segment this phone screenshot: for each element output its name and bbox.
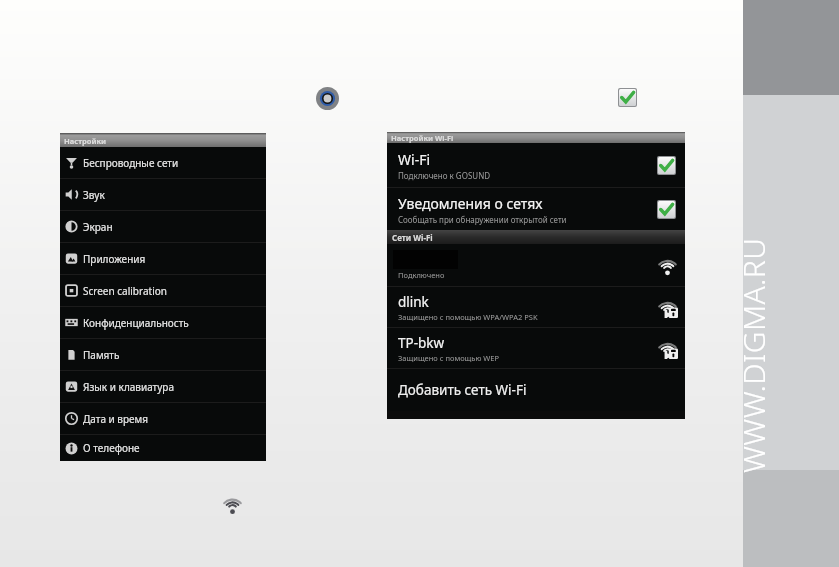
staticText: WWW.DIGMA.RU <box>733 237 765 473</box>
staticText: Беспроводные сети <box>83 156 179 170</box>
button[interactable]: TP-bkw <box>387 328 685 368</box>
button[interactable]: Приложения <box>60 243 266 274</box>
other: Enabled <box>618 88 637 107</box>
staticText: Защищено с помощью WPA/WPA2 PSK <box>398 312 538 322</box>
staticText: Звук <box>83 188 105 202</box>
staticText: Конфиденциальность <box>83 316 189 330</box>
other: Уведомления о сетях <box>657 200 676 219</box>
staticText: Настройки <box>64 136 107 146</box>
button[interactable]: Беспроводные сети <box>60 147 266 178</box>
button[interactable]: О телефоне <box>60 435 266 461</box>
button[interactable]: Wi-Fi <box>387 143 685 187</box>
staticText: Screen calibration <box>83 284 167 298</box>
button[interactable]: Screen calibration <box>60 275 266 306</box>
button[interactable]: Дата и время <box>60 403 266 434</box>
staticText: TP-bkw <box>398 334 445 352</box>
button[interactable]: Уведомления о сетях <box>387 188 685 230</box>
button[interactable]: Добавить сеть Wi-Fi <box>387 369 685 411</box>
button[interactable]: Память <box>60 339 266 370</box>
staticText: Память <box>83 348 120 362</box>
staticText: Приложения <box>83 252 146 266</box>
staticText: Защищено с помощью WEP <box>398 353 500 363</box>
staticText: Сообщать при обнаружении открытой сети <box>398 214 567 225</box>
staticText: dlink <box>398 293 429 311</box>
staticText: Добавить сеть Wi-Fi <box>398 381 527 399</box>
button[interactable]: Подключено <box>387 244 685 286</box>
other: Settings <box>316 87 339 110</box>
staticText: Уведомления о сетях <box>398 194 543 213</box>
button[interactable]: Язык и клавиатура <box>60 371 266 402</box>
other: Wi-Fi <box>657 156 676 175</box>
button[interactable]: Экран <box>60 211 266 242</box>
staticText: Дата и время <box>83 412 149 426</box>
staticText: Настройки Wi-Fi <box>391 133 454 143</box>
staticText: Подключено <box>398 270 445 280</box>
staticText: Язык и клавиатура <box>83 380 174 394</box>
staticText: Экран <box>83 220 113 234</box>
other: Wi-Fi <box>222 493 243 515</box>
button[interactable]: Звук <box>60 179 266 210</box>
staticText: О телефоне <box>83 441 140 455</box>
staticText: Сети Wi-Fi <box>392 232 433 243</box>
staticText: Подключено к GOSUND <box>398 170 491 181</box>
staticText: Wi-Fi <box>398 150 431 169</box>
button[interactable]: dlink <box>387 287 685 327</box>
button[interactable]: Конфиденциальность <box>60 307 266 338</box>
